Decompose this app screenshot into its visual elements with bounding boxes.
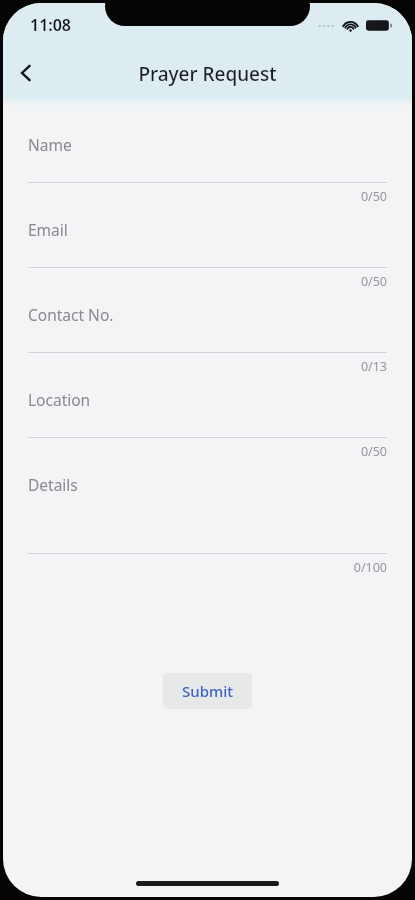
button[interactable]: Location (28, 389, 387, 460)
button[interactable]: Submit (163, 673, 252, 709)
staticText: Details (28, 474, 78, 495)
staticText: Submit (182, 681, 233, 701)
staticText: 0/13 (28, 358, 387, 375)
staticText: 0/100 (28, 559, 387, 576)
staticText: Name (28, 134, 72, 155)
button[interactable]: Back (3, 50, 49, 96)
button[interactable]: Contact No. (28, 304, 387, 375)
staticText: 0/50 (28, 188, 387, 205)
staticText: Contact No. (28, 304, 114, 325)
staticText: Location (28, 389, 91, 410)
staticText: 0/50 (28, 443, 387, 460)
staticText: 0/50 (28, 273, 387, 290)
button[interactable]: Details (28, 474, 387, 576)
button[interactable]: Name (28, 134, 387, 205)
staticText: 11:08 (30, 14, 72, 36)
staticText: Email (28, 219, 68, 240)
staticText: Prayer Request (138, 61, 277, 87)
button[interactable]: Email (28, 219, 387, 290)
